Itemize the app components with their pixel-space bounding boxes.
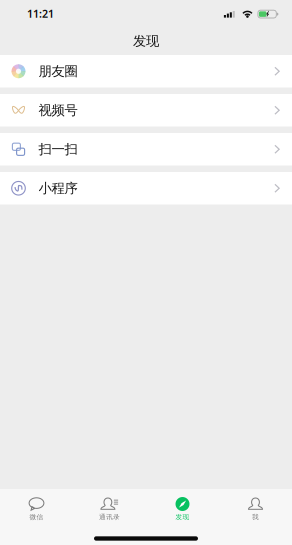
button[interactable]: 微信 (0, 489, 73, 524)
button[interactable]: 我 (219, 489, 292, 524)
staticText: 发现 (133, 33, 159, 49)
staticText: 视频号 (38, 102, 77, 118)
staticText: 微信 (29, 513, 43, 521)
button[interactable]: 小程序 (0, 172, 292, 204)
button[interactable]: 通讯录 (73, 489, 146, 524)
staticText: 朋友圈 (38, 63, 77, 79)
staticText: 小程序 (38, 180, 77, 196)
button[interactable]: 发现 (146, 489, 219, 524)
button[interactable]: 朋友圈 (0, 55, 292, 87)
staticText: 通讯录 (99, 513, 120, 521)
staticText: 11:21 (27, 6, 54, 21)
staticText: 发现 (175, 513, 189, 521)
staticText: 我 (252, 513, 259, 521)
button[interactable]: 视频号 (0, 94, 292, 126)
button[interactable]: 扫一扫 (0, 133, 292, 165)
staticText: 扫一扫 (38, 141, 77, 157)
